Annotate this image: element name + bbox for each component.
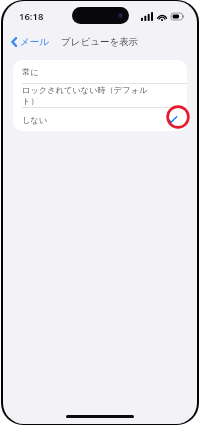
button[interactable]: ロックされていない時（デフォルト） [13,84,187,108]
button[interactable]: しない [13,108,187,131]
button[interactable]: メール [3,33,55,51]
button[interactable]: 常に [13,60,187,84]
staticText: プレビューを表示 [61,36,139,48]
staticText: ロックされていない時（デフォルト） [22,85,161,107]
staticText: メール [20,36,49,48]
staticText: しない [22,115,48,125]
staticText: 16:18 [19,10,44,23]
staticText: 常に [22,67,39,77]
